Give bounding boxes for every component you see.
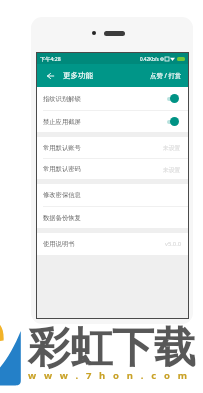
button[interactable]: 修改密保信息: [37, 184, 188, 206]
staticText: 彩虹下载: [28, 322, 196, 375]
staticText: 使用说明书: [43, 240, 75, 248]
staticText: 更多功能: [63, 71, 93, 80]
staticText: v5.0.0: [165, 240, 181, 248]
staticText: 指纹识别解锁: [43, 95, 81, 103]
staticText: 未设置: [163, 166, 181, 173]
button[interactable]: 禁止应用截屏: [37, 111, 188, 132]
button[interactable]: 点赞 / 打赏: [142, 66, 188, 85]
staticText: 未设置: [163, 144, 181, 151]
staticText: 数据备份恢复: [43, 214, 81, 222]
staticText: 常用默认密码: [43, 165, 81, 173]
staticText: www.7hon.com: [28, 369, 195, 382]
button[interactable]: 返回: [37, 64, 63, 87]
button[interactable]: 常用默认密码: [37, 159, 188, 179]
button[interactable]: 数据备份恢复: [37, 207, 188, 228]
button[interactable]: 使用说明书: [37, 233, 188, 255]
staticText: 修改密保信息: [43, 191, 81, 199]
staticText: 点赞 / 打赏: [150, 71, 182, 80]
button[interactable]: 指纹识别解锁: [37, 87, 188, 110]
staticText: 下午4:28: [40, 55, 61, 62]
button[interactable]: 常用默认账号: [37, 137, 188, 158]
staticText: 0.42Kb/s: [140, 56, 159, 62]
staticText: 常用默认账号: [43, 144, 81, 152]
staticText: 禁止应用截屏: [43, 118, 81, 126]
